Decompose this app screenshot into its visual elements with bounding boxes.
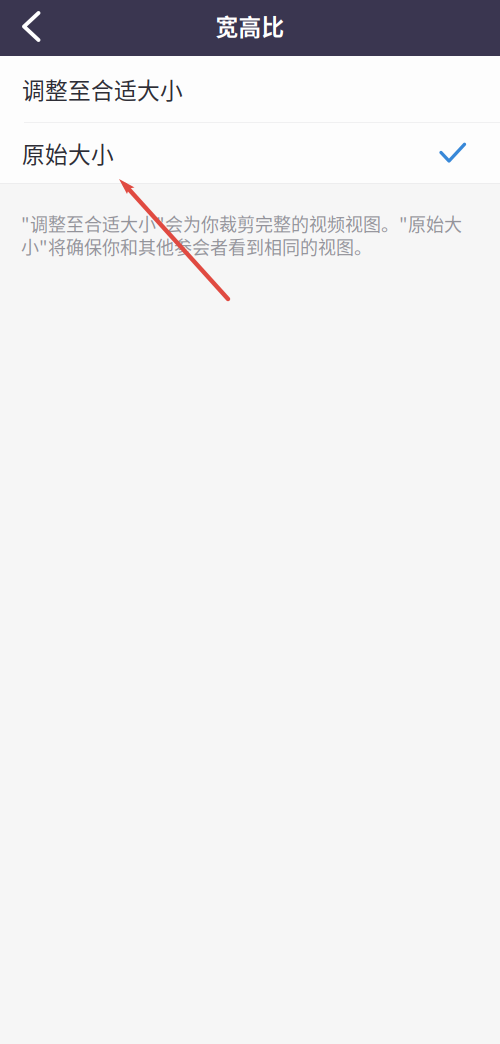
button[interactable]: 调整至合适大小 [0, 56, 500, 122]
button[interactable]: Back [0, 6, 62, 50]
staticText: 原始大小 [22, 137, 114, 169]
staticText: "调整至合适大小"会为你裁剪完整的视频视图。"原始大 [21, 210, 462, 237]
button[interactable]: 原始大小 [0, 123, 500, 183]
staticText: 调整至合适大小 [22, 73, 183, 105]
staticText: 宽高比 [215, 9, 284, 42]
staticText: 小"将确保你和其他参会者看到相同的视图。 [21, 233, 372, 260]
